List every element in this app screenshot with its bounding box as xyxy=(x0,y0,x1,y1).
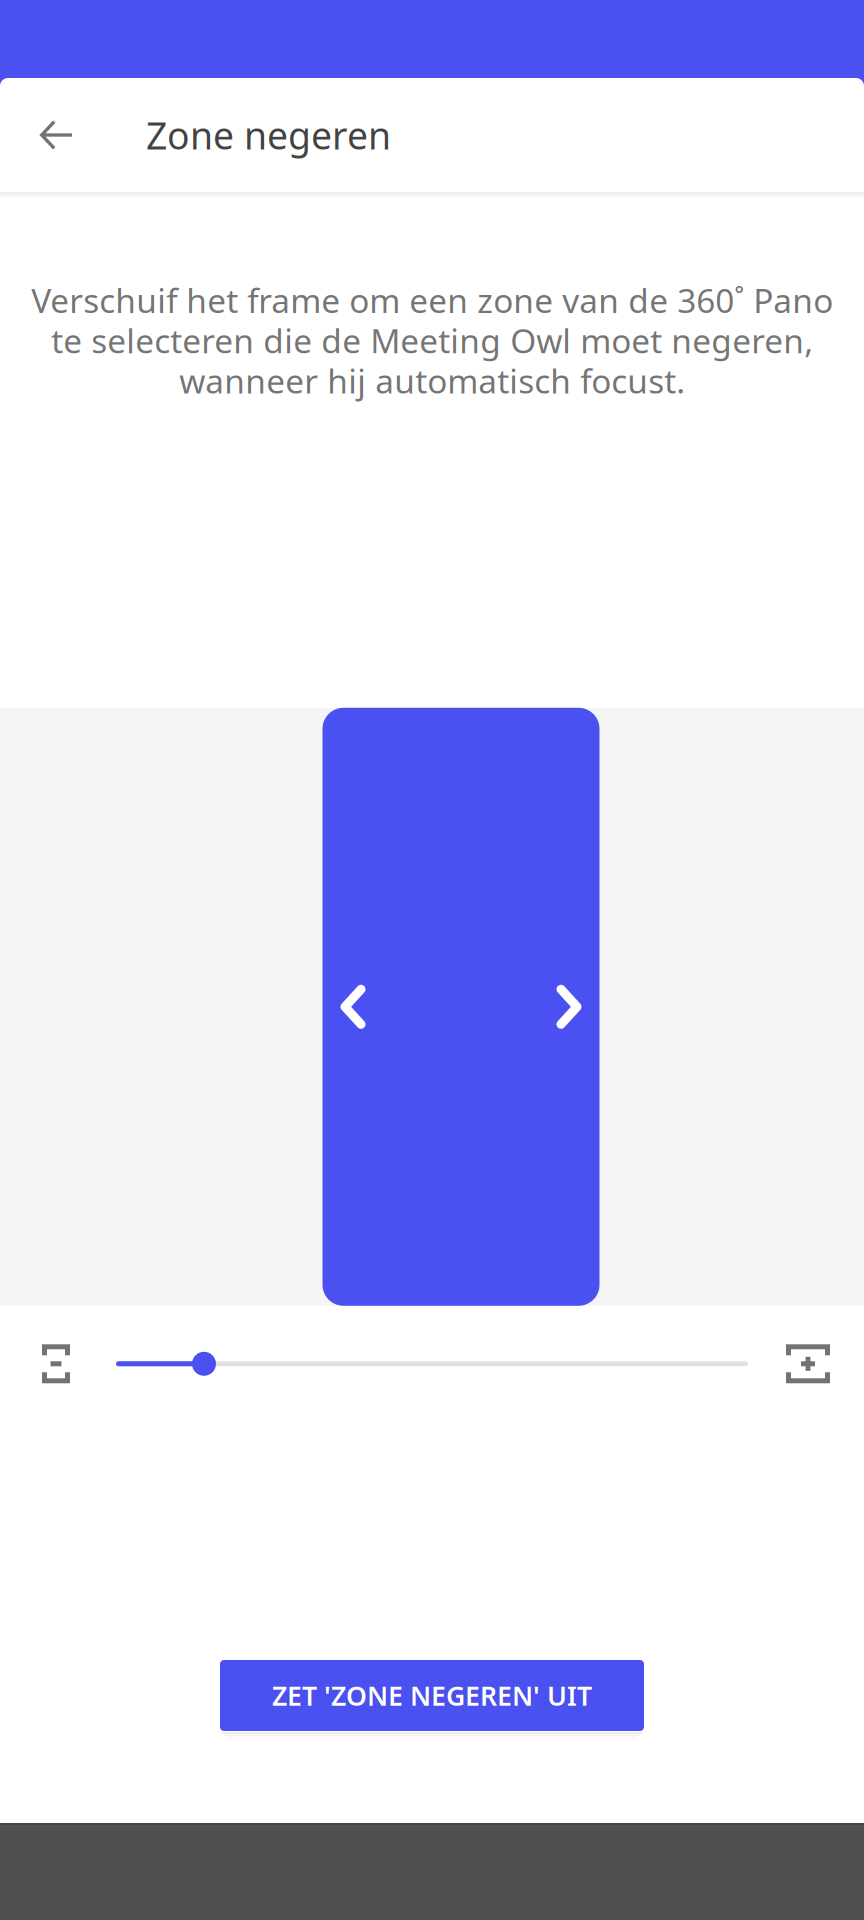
button[interactable]: ZET 'ZONE NEGEREN' UIT xyxy=(220,1660,644,1739)
staticText: Verschuif het frame om een zone van de 3… xyxy=(31,278,833,403)
staticText: Zone negeren xyxy=(146,110,391,160)
button[interactable]: Zone versmallen xyxy=(42,1344,70,1383)
button[interactable]: Zone verbreden xyxy=(786,1344,830,1383)
button[interactable]: Terug xyxy=(0,78,112,192)
staticText: ZET 'ZONE NEGEREN' UIT xyxy=(272,1678,592,1713)
